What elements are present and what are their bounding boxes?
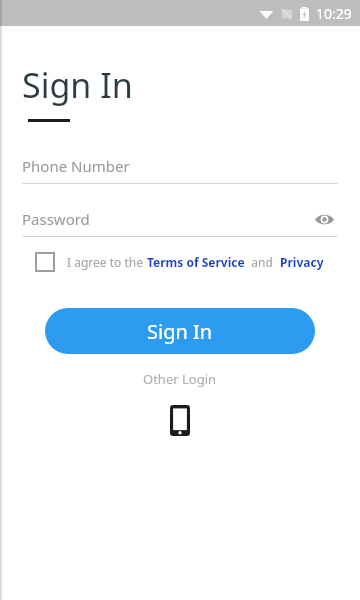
staticText: Other Login xyxy=(143,370,217,388)
button[interactable]: Password xyxy=(22,202,338,236)
staticText: Phone Number xyxy=(22,156,130,176)
staticText: Sign In xyxy=(147,318,213,345)
button[interactable]: Phone Number xyxy=(22,149,338,183)
staticText: and xyxy=(245,254,280,270)
staticText: Privacy xyxy=(280,254,324,270)
staticText: Password xyxy=(22,209,90,229)
button[interactable]: Show password xyxy=(310,205,338,233)
button[interactable]: Sign In xyxy=(45,308,315,354)
button[interactable]: Login with phone xyxy=(163,402,197,438)
staticText: I agree to the xyxy=(67,254,147,270)
staticText: Terms of Service xyxy=(147,254,245,270)
button[interactable]: Terms of Service xyxy=(147,254,245,270)
staticText: 10:29 xyxy=(316,4,352,23)
button[interactable]: Agree to terms checkbox xyxy=(36,253,54,271)
button[interactable]: Privacy xyxy=(280,254,324,270)
staticText: Sign In xyxy=(22,62,133,108)
